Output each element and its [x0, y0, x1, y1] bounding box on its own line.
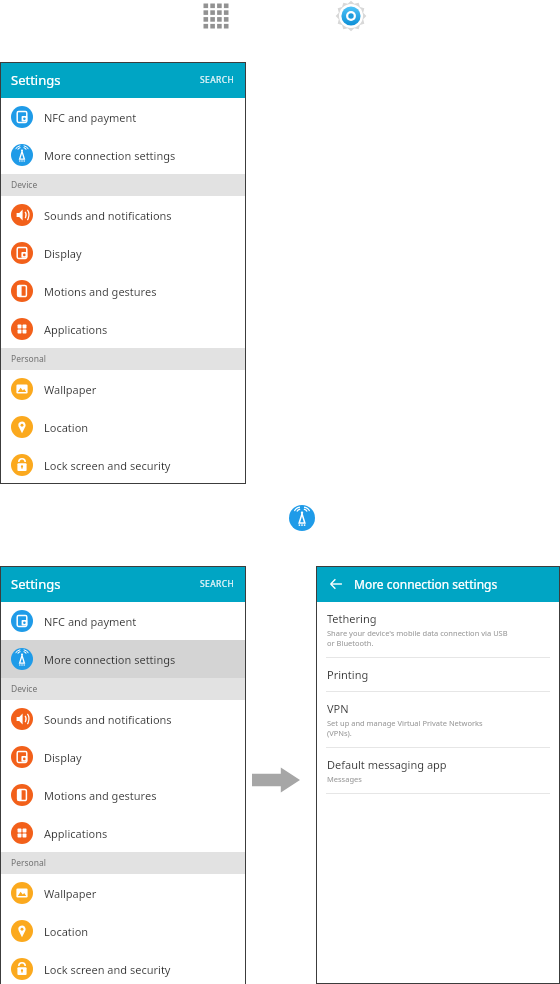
button[interactable]: More connection settings — [0, 640, 246, 678]
staticText: Device — [11, 179, 38, 191]
button[interactable]: Sounds and notifications — [0, 196, 246, 234]
button[interactable]: NFC and payment — [0, 602, 246, 640]
button[interactable]: More connection settings — [0, 136, 246, 174]
button[interactable]: Wallpaper — [0, 370, 246, 408]
button[interactable]: Apps — [201, 1, 231, 31]
button[interactable]: SEARCH — [200, 74, 235, 86]
staticText: Wallpaper — [44, 382, 97, 397]
staticText: More connection settings — [44, 652, 176, 667]
staticText: Device — [11, 683, 38, 695]
staticText: Lock screen and security — [44, 458, 171, 473]
button[interactable]: Tethering — [316, 602, 560, 657]
staticText: VPN — [327, 701, 349, 716]
staticText: Motions and gestures — [44, 284, 157, 299]
button[interactable]: Applications — [0, 310, 246, 348]
staticText: Settings — [11, 575, 61, 593]
staticText: More connection settings — [354, 576, 498, 592]
button[interactable]: Settings — [335, 0, 367, 32]
staticText: More connection settings — [44, 148, 176, 163]
staticText: Sounds and notifications — [44, 208, 172, 223]
button[interactable]: Default messaging app — [316, 748, 560, 793]
staticText: Location — [44, 924, 89, 939]
staticText: Display — [44, 750, 82, 765]
staticText: Settings — [11, 71, 61, 89]
staticText: Personal — [11, 857, 46, 869]
staticText: SEARCH — [200, 74, 235, 86]
staticText: Tethering — [327, 611, 377, 626]
button[interactable]: Lock screen and security — [0, 950, 246, 984]
button[interactable]: Applications — [0, 814, 246, 852]
button[interactable]: Display — [0, 738, 246, 776]
staticText: Set up and manage Virtual Private Networ… — [327, 718, 483, 738]
staticText: Printing — [327, 667, 369, 682]
staticText: SEARCH — [200, 578, 235, 590]
staticText: Messages — [327, 774, 362, 784]
staticText: Sounds and notifications — [44, 712, 172, 727]
button[interactable]: Display — [0, 234, 246, 272]
button[interactable]: Motions and gestures — [0, 776, 246, 814]
staticText: Motions and gestures — [44, 788, 157, 803]
button[interactable]: Printing — [316, 658, 560, 691]
button[interactable]: Lock screen and security — [0, 446, 246, 484]
staticText: Default messaging app — [327, 757, 447, 772]
staticText: Personal — [11, 353, 46, 365]
staticText: Location — [44, 420, 89, 435]
staticText: Display — [44, 246, 82, 261]
staticText: Applications — [44, 826, 108, 841]
staticText: NFC and payment — [44, 110, 137, 125]
button[interactable]: Wallpaper — [0, 874, 246, 912]
button[interactable]: Location — [0, 912, 246, 950]
staticText: NFC and payment — [44, 614, 137, 629]
staticText: Lock screen and security — [44, 962, 171, 977]
staticText: Wallpaper — [44, 886, 97, 901]
staticText: Share your device's mobile data connecti… — [327, 628, 508, 648]
button[interactable]: Location — [0, 408, 246, 446]
button[interactable]: Motions and gestures — [0, 272, 246, 310]
button[interactable]: SEARCH — [200, 578, 235, 590]
staticText: Applications — [44, 322, 108, 337]
button[interactable]: NFC and payment — [0, 98, 246, 136]
button[interactable]: Back — [325, 573, 347, 595]
button[interactable]: VPN — [316, 692, 560, 747]
button[interactable]: Sounds and notifications — [0, 700, 246, 738]
